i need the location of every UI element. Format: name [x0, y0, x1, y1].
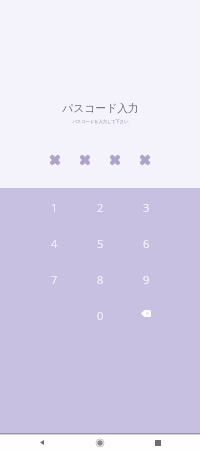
button[interactable]: Home [90, 433, 110, 450]
staticText: パスコード入力 [62, 102, 139, 116]
staticText: 6 [143, 236, 150, 251]
staticText: 8 [97, 272, 104, 287]
button[interactable]: 0 [77, 297, 123, 333]
button[interactable]: 5 [77, 225, 123, 261]
staticText: 0 [97, 308, 104, 323]
button[interactable]: Backspace [123, 297, 169, 333]
button[interactable]: 4 [31, 225, 77, 261]
button[interactable]: Back [32, 433, 52, 450]
staticText: 2 [97, 200, 104, 215]
staticText: 4 [51, 236, 58, 251]
staticText: 1 [51, 200, 58, 215]
button[interactable]: Recents [148, 433, 168, 450]
staticText: 9 [143, 272, 150, 287]
staticText: 3 [143, 200, 150, 215]
button[interactable]: 1 [31, 189, 77, 225]
button[interactable]: 7 [31, 261, 77, 297]
button[interactable]: 3 [123, 189, 169, 225]
staticText: 5 [97, 236, 104, 251]
staticText: 7 [51, 272, 58, 287]
button[interactable]: 8 [77, 261, 123, 297]
button[interactable]: 9 [123, 261, 169, 297]
other: Backspace [141, 310, 151, 317]
button[interactable]: 6 [123, 225, 169, 261]
staticText: パスコードを入力して下さい [72, 119, 129, 124]
button[interactable]: 2 [77, 189, 123, 225]
